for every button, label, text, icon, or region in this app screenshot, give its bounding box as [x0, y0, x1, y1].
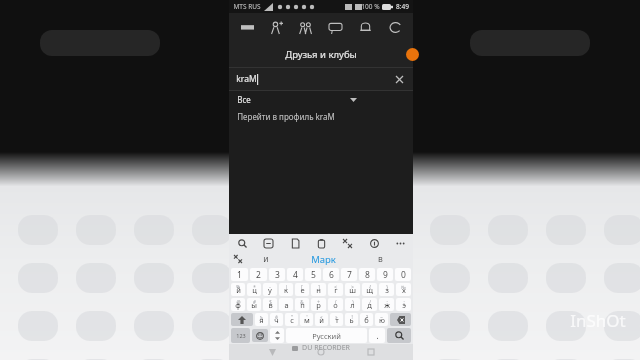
staticText: 9 [383, 269, 388, 281]
button[interactable]: ~ [375, 313, 388, 326]
button[interactable]: Русский [286, 328, 367, 343]
button[interactable]: More [392, 235, 408, 251]
button[interactable]: Перейти в профиль kraM [229, 108, 413, 124]
button[interactable]: Notifications [354, 16, 376, 38]
button[interactable]: ё [270, 313, 283, 326]
button[interactable]: Period [369, 328, 385, 343]
button[interactable]: * [247, 283, 261, 296]
button[interactable]: } [379, 283, 394, 296]
staticText: е [300, 285, 305, 295]
button[interactable]: и [247, 251, 285, 267]
button[interactable]: 1 [231, 268, 248, 281]
button[interactable]: + [311, 298, 326, 311]
button[interactable]: Voice [229, 251, 247, 267]
button[interactable]: kraM [229, 68, 413, 90]
button[interactable]: Menu [236, 16, 258, 38]
button[interactable]: Arrows [270, 328, 284, 343]
button[interactable]: ] [311, 283, 326, 296]
staticText: * [253, 284, 256, 290]
button[interactable]: Clear [392, 72, 406, 86]
button[interactable]: 8 [359, 268, 375, 281]
button[interactable]: % [231, 283, 245, 296]
button[interactable]: Emoji [252, 329, 268, 342]
button[interactable]: < [328, 283, 343, 296]
button[interactable]: Copy [313, 235, 329, 251]
button[interactable]: { [362, 283, 377, 296]
button[interactable]: ) [345, 298, 360, 311]
button[interactable]: & [295, 298, 309, 311]
button[interactable]: 5 [305, 268, 321, 281]
staticText: 8:49 [396, 2, 409, 11]
button[interactable]: ' [300, 313, 313, 326]
staticText: > [351, 284, 354, 290]
staticText: + [317, 299, 320, 305]
button[interactable]: / [362, 298, 377, 311]
staticText: 100 % [361, 2, 380, 11]
staticText: № [401, 284, 406, 290]
staticText: ? [366, 314, 368, 320]
button[interactable]: : [379, 298, 394, 311]
button[interactable]: Back [265, 345, 279, 359]
staticText: ъ [260, 314, 263, 320]
staticText: й [236, 285, 241, 295]
button[interactable]: ! [345, 313, 358, 326]
button[interactable]: Info [366, 235, 382, 251]
button[interactable]: в [361, 251, 399, 267]
button[interactable]: | [279, 283, 293, 296]
button[interactable]: " [285, 313, 298, 326]
button[interactable]: ? [360, 313, 373, 326]
button[interactable]: - [263, 283, 277, 296]
staticText: ж [384, 300, 390, 310]
button[interactable]: Все [229, 91, 413, 108]
staticText: т [335, 315, 339, 325]
button[interactable]: Messages [324, 16, 346, 38]
button[interactable]: Марк [285, 251, 361, 267]
button[interactable]: ъ [255, 313, 268, 326]
button[interactable]: 9 [377, 268, 393, 281]
button[interactable]: $ [263, 298, 277, 311]
staticText: " [291, 314, 293, 320]
button[interactable]: Recents [364, 345, 378, 359]
staticText: $ [269, 299, 272, 305]
button[interactable]: Stickers [260, 235, 276, 251]
button[interactable]: 4 [287, 268, 303, 281]
staticText: # [253, 299, 256, 305]
staticText: ] [318, 284, 320, 290]
button[interactable]: Add friend [265, 16, 287, 38]
button[interactable]: Clipboard [287, 235, 303, 251]
button[interactable]: Friends [294, 16, 316, 38]
button[interactable]: 3 [269, 268, 285, 281]
staticText: п [300, 300, 305, 310]
button[interactable]: Search [234, 235, 250, 251]
button[interactable]: > [345, 283, 360, 296]
button[interactable]: Translate [339, 235, 355, 251]
button[interactable]: Shift [231, 313, 253, 326]
button[interactable]: 6 [323, 268, 339, 281]
staticText: р [316, 300, 321, 310]
button[interactable]: ( [328, 298, 343, 311]
staticText: в [268, 300, 273, 310]
button[interactable]: # [247, 298, 261, 311]
button[interactable]: 0 [395, 268, 411, 281]
button[interactable]: 123 [231, 328, 250, 343]
button[interactable]: 7 [341, 268, 357, 281]
button[interactable]: ; [396, 298, 411, 311]
button[interactable]: 2 [250, 268, 267, 281]
staticText: 2 [256, 269, 261, 281]
button[interactable]: [ [295, 283, 309, 296]
staticText: с [290, 315, 294, 325]
button[interactable]: Home [314, 345, 328, 359]
staticText: в [378, 253, 383, 265]
button[interactable]: _ [279, 298, 293, 311]
button[interactable]: Backspace [390, 313, 411, 326]
button[interactable]: № [396, 283, 411, 296]
button[interactable]: Search [387, 328, 411, 343]
button[interactable]: Refresh [384, 16, 406, 38]
staticText: ч [274, 315, 279, 325]
button[interactable]: « [315, 313, 328, 326]
staticText: 3 [275, 269, 280, 281]
staticText: о [333, 300, 338, 310]
button[interactable]: » [330, 313, 343, 326]
button[interactable]: @ [231, 298, 245, 311]
staticText: ь [349, 315, 354, 325]
